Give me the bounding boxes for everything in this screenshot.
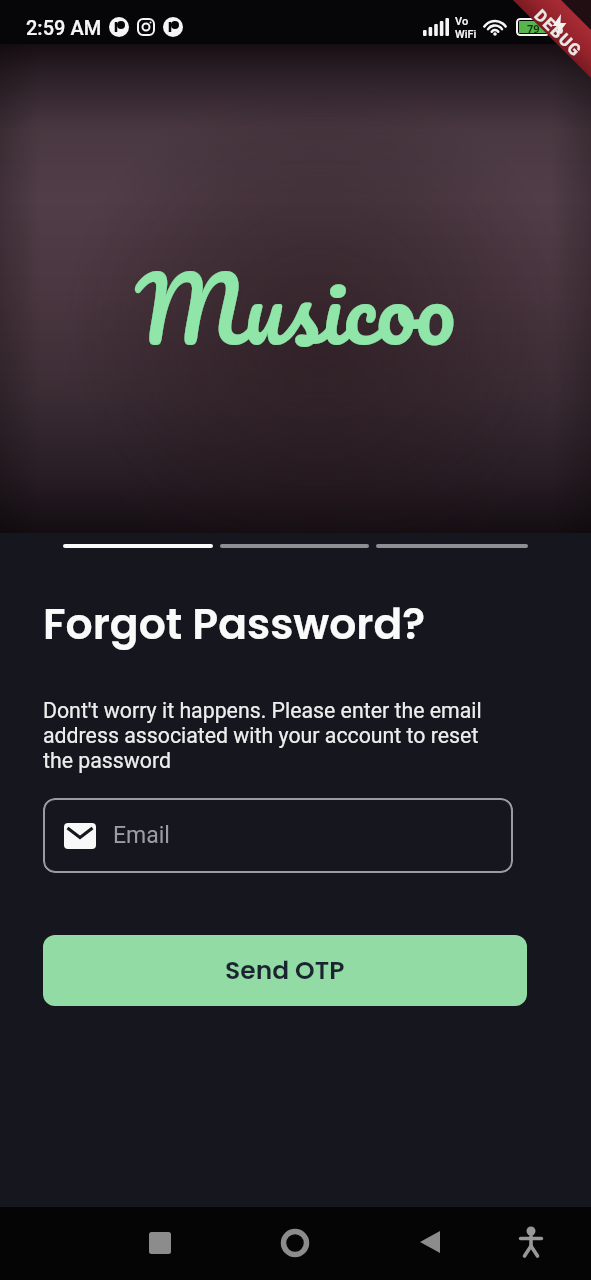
button[interactable]: Email — [43, 798, 513, 873]
button[interactable] — [419, 1231, 441, 1253]
staticText: Dont't worry it happens. Please enter th… — [43, 698, 482, 773]
staticText: Musicoo — [135, 230, 456, 385]
staticText: Email — [113, 822, 170, 849]
button[interactable]: Send OTP — [43, 935, 527, 1006]
staticText: 2:59 AM — [26, 16, 102, 39]
button[interactable] — [516, 1226, 546, 1256]
staticText: Vo WiFi — [455, 15, 477, 40]
staticText: Send OTP — [225, 953, 345, 988]
staticText: 79 — [527, 21, 540, 33]
button[interactable] — [281, 1229, 309, 1257]
staticText: DEBUG — [531, 6, 586, 61]
button[interactable] — [149, 1232, 171, 1254]
staticText: Forgot Password? — [43, 594, 426, 653]
